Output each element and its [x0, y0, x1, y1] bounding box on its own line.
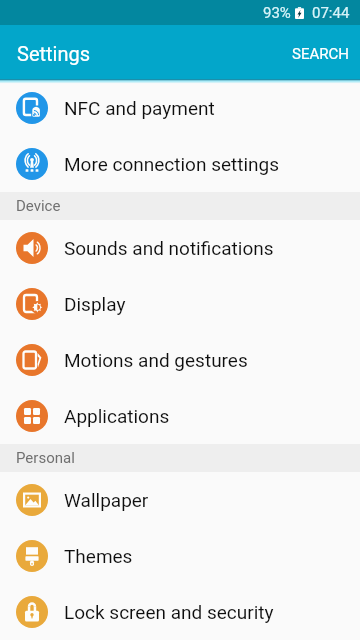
button[interactable]: Applications: [0, 388, 360, 444]
staticText: Wallpaper: [64, 489, 149, 511]
staticText: Settings: [17, 42, 91, 65]
button[interactable]: Wallpaper: [0, 472, 360, 528]
button[interactable]: Lock screen and security: [0, 584, 360, 640]
staticText: SEARCH: [292, 45, 349, 63]
staticText: Display: [64, 293, 126, 315]
staticText: Personal: [16, 449, 75, 467]
staticText: Themes: [64, 545, 133, 567]
staticText: 93%: [263, 4, 291, 22]
button[interactable]: Display: [0, 276, 360, 332]
button[interactable]: Themes: [0, 528, 360, 584]
staticText: Motions and gestures: [64, 349, 248, 371]
staticText: Sounds and notifications: [64, 237, 274, 259]
button[interactable]: SEARCH: [280, 29, 360, 76]
staticText: Applications: [64, 405, 170, 427]
staticText: 07:44: [312, 4, 350, 22]
button[interactable]: NFC and payment: [0, 80, 360, 136]
staticText: Device: [16, 197, 61, 215]
button[interactable]: More connection settings: [0, 136, 360, 192]
button[interactable]: Motions and gestures: [0, 332, 360, 388]
staticText: NFC and payment: [64, 97, 215, 119]
staticText: More connection settings: [64, 153, 280, 175]
staticText: Lock screen and security: [64, 601, 274, 623]
button[interactable]: Sounds and notifications: [0, 220, 360, 276]
